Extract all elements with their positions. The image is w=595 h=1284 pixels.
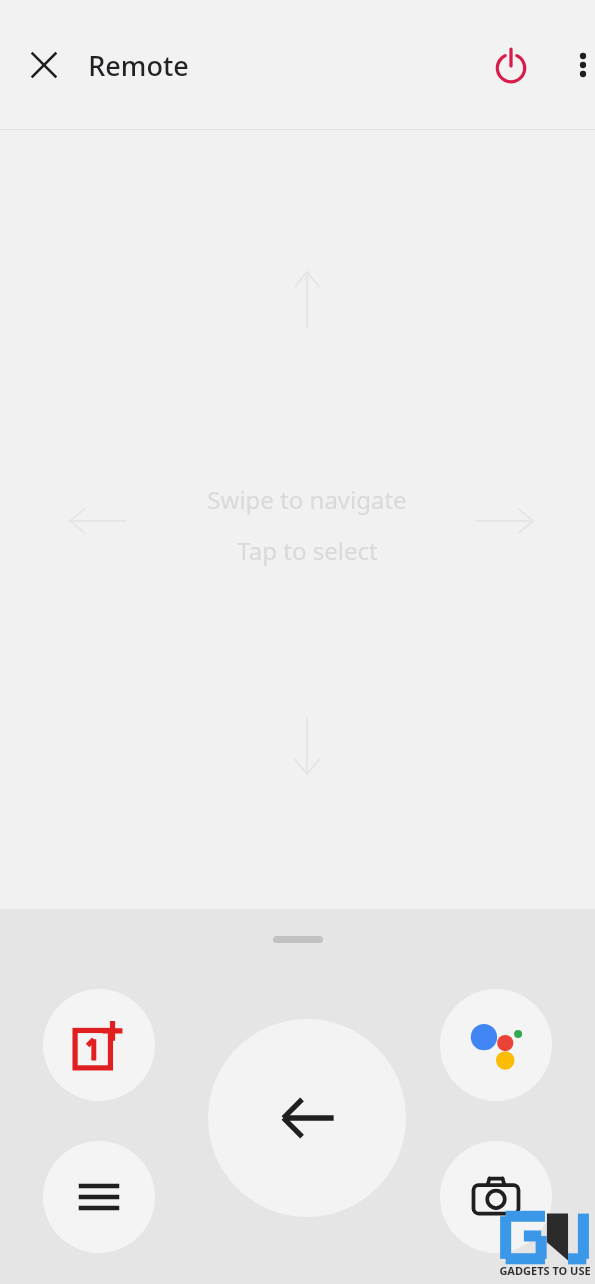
button[interactable]: Google Assistant — [440, 989, 552, 1101]
button[interactable]: Camera — [440, 1141, 552, 1253]
button[interactable]: Power — [481, 35, 541, 95]
staticText: GADGETS TO USE — [499, 1263, 591, 1278]
staticText: Swipe to navigate — [207, 483, 407, 516]
staticText: Tap to select — [237, 534, 378, 567]
button[interactable]: Menu — [43, 1141, 155, 1253]
button[interactable]: Back — [208, 1019, 406, 1217]
button[interactable]: More options — [561, 43, 595, 87]
staticText: Remote — [88, 47, 189, 84]
button[interactable]: Close — [24, 45, 64, 85]
button[interactable]: OnePlus apps — [43, 989, 155, 1101]
